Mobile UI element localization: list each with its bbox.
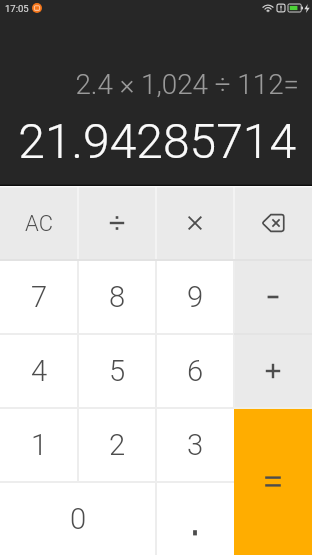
staticText: 2 bbox=[109, 428, 126, 462]
button[interactable]: Equals bbox=[234, 408, 312, 482]
staticText: 1 bbox=[31, 428, 48, 462]
button[interactable]: 5 bbox=[78, 334, 156, 408]
staticText: 17:05 bbox=[5, 3, 29, 14]
staticText: 21.94285714 bbox=[18, 113, 296, 169]
button[interactable]: 3 bbox=[156, 408, 234, 482]
button[interactable]: Divide bbox=[78, 186, 156, 260]
staticText: 4 bbox=[31, 354, 48, 388]
button[interactable]: 0 bbox=[0, 482, 156, 555]
staticText: 2.4 × 1,024 ÷ 112= bbox=[75, 68, 299, 101]
button[interactable]: 1 bbox=[0, 408, 78, 482]
staticText: 8 bbox=[109, 280, 126, 314]
button[interactable]: 6 bbox=[156, 334, 234, 408]
staticText: 0 bbox=[70, 502, 87, 536]
staticText: 5 bbox=[109, 354, 126, 388]
button[interactable]: 2 bbox=[78, 408, 156, 482]
button[interactable]: 9 bbox=[156, 260, 234, 334]
staticText: 9 bbox=[187, 280, 204, 314]
button[interactable]: 8 bbox=[78, 260, 156, 334]
button[interactable]: 7 bbox=[0, 260, 78, 334]
button[interactable]: AC bbox=[0, 186, 78, 260]
button[interactable]: Equals bbox=[234, 482, 312, 555]
button[interactable]: Multiply bbox=[156, 186, 234, 260]
button[interactable]: 4 bbox=[0, 334, 78, 408]
staticText: AC bbox=[25, 211, 53, 237]
staticText: 6 bbox=[187, 354, 204, 388]
staticText: 3 bbox=[187, 428, 204, 462]
staticText: 7 bbox=[31, 280, 48, 314]
button[interactable]: Minus bbox=[234, 260, 312, 334]
button[interactable]: Plus bbox=[234, 334, 312, 408]
button[interactable]: Decimal point bbox=[156, 482, 234, 555]
button[interactable]: Backspace bbox=[234, 186, 312, 260]
